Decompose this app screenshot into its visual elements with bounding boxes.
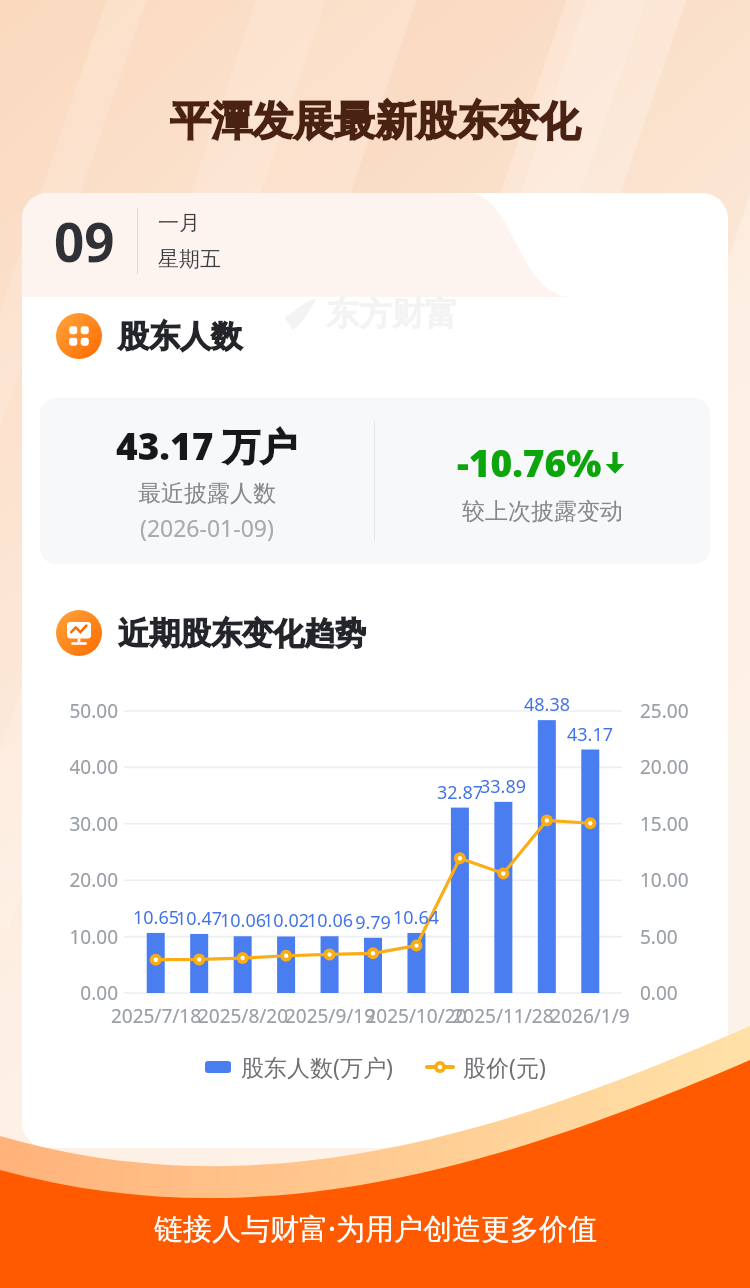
staticText: 2025/7/18 (101, 1003, 211, 1029)
staticText: 股东人数(万户) (241, 1051, 393, 1082)
staticText: 50.00 (42, 698, 118, 724)
staticText: 43.17 万户 (116, 420, 298, 471)
staticText: 20.00 (640, 754, 689, 780)
staticText: 10.06 (215, 908, 271, 933)
staticText: 32.87 (432, 780, 488, 805)
staticText: 33.89 (475, 774, 531, 799)
staticText: 09 (54, 205, 115, 277)
staticText: 链接人与财富·为用户创造更多价值 (154, 1208, 597, 1248)
staticText: 25.00 (640, 698, 689, 724)
staticText: -10.76% (457, 437, 602, 487)
staticText: 15.00 (640, 811, 689, 837)
button[interactable]: 股东人数 (56, 313, 242, 359)
staticText: 2025/10/20 (361, 1003, 471, 1029)
staticText: 股东人数 (118, 317, 242, 356)
staticText: 10.00 (42, 924, 118, 950)
staticText: 近期股东变化趋势 (118, 614, 366, 653)
staticText: 股价(元) (463, 1051, 546, 1082)
staticText: 最近披露人数 (138, 479, 276, 508)
staticText: 东方财富 (326, 293, 458, 335)
button[interactable]: 股东人数(万户) (205, 1051, 393, 1082)
staticText: 10.00 (640, 867, 689, 893)
staticText: 30.00 (42, 811, 118, 837)
staticText: 一月 (158, 210, 200, 236)
staticText: 2026/1/9 (535, 1003, 645, 1029)
staticText: 0.00 (42, 980, 118, 1006)
other: 股东人数 (56, 313, 102, 359)
button[interactable]: 股价(元) (427, 1051, 546, 1082)
staticText: 2025/8/20 (188, 1003, 298, 1029)
staticText: 10.65 (128, 905, 184, 930)
staticText: 星期五 (158, 246, 221, 272)
staticText: 10.47 (171, 906, 227, 931)
staticText: 平潭发展最新股东变化 (0, 96, 750, 148)
button[interactable]: 43.17 万户 (40, 398, 710, 564)
staticText: 43.17 (562, 722, 618, 747)
staticText: 2025/11/28 (448, 1003, 558, 1029)
button[interactable]: 近期股东变化趋势 (56, 610, 366, 656)
staticText: 9.79 (345, 910, 401, 935)
staticText: (2026-01-09) (140, 512, 274, 543)
staticText: 10.02 (258, 908, 314, 933)
staticText: 48.38 (519, 692, 575, 717)
staticText: 20.00 (42, 867, 118, 893)
staticText: 40.00 (42, 754, 118, 780)
staticText: 10.64 (388, 905, 444, 930)
staticText: 0.00 (640, 980, 678, 1006)
other: 近期股东变化趋势 (56, 610, 102, 656)
staticText: 较上次披露变动 (462, 497, 623, 526)
staticText: 5.00 (640, 924, 678, 950)
staticText: 10.06 (302, 908, 358, 933)
staticText: 2025/9/19 (275, 1003, 385, 1029)
